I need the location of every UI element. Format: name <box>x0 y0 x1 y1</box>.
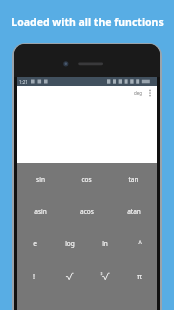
button[interactable]: ! <box>17 269 52 283</box>
button[interactable]: tan <box>110 173 157 185</box>
staticText: e <box>33 239 37 248</box>
staticText: cos <box>81 175 92 184</box>
button[interactable]: More options <box>145 88 155 98</box>
button[interactable]: e <box>17 237 52 249</box>
button[interactable]: ln <box>87 237 122 249</box>
staticText: ln <box>102 239 108 248</box>
staticText: deg <box>134 90 143 96</box>
button[interactable]: Square root <box>52 269 87 283</box>
button[interactable]: deg <box>132 89 145 97</box>
staticText: log <box>65 239 75 248</box>
button[interactable]: sin <box>17 173 63 185</box>
staticText: ! <box>33 271 36 281</box>
staticText: acos <box>80 207 94 216</box>
staticText: π <box>137 271 142 281</box>
button[interactable]: atan <box>110 205 157 217</box>
staticText: ^ <box>138 239 142 248</box>
staticText: sin <box>36 175 45 184</box>
button[interactable]: asin <box>17 205 63 217</box>
button[interactable]: cos <box>63 173 110 185</box>
button[interactable]: log <box>52 237 87 249</box>
staticText: atan <box>127 207 141 216</box>
button[interactable]: acos <box>63 205 110 217</box>
button[interactable]: Cube root <box>87 269 122 283</box>
staticText: asin <box>34 207 47 216</box>
staticText: tan <box>128 175 139 184</box>
staticText: Loaded with all the functions <box>11 15 164 29</box>
button[interactable]: ^ <box>122 237 157 249</box>
button[interactable]: π <box>122 269 157 283</box>
staticText: 1:21 <box>19 79 28 85</box>
